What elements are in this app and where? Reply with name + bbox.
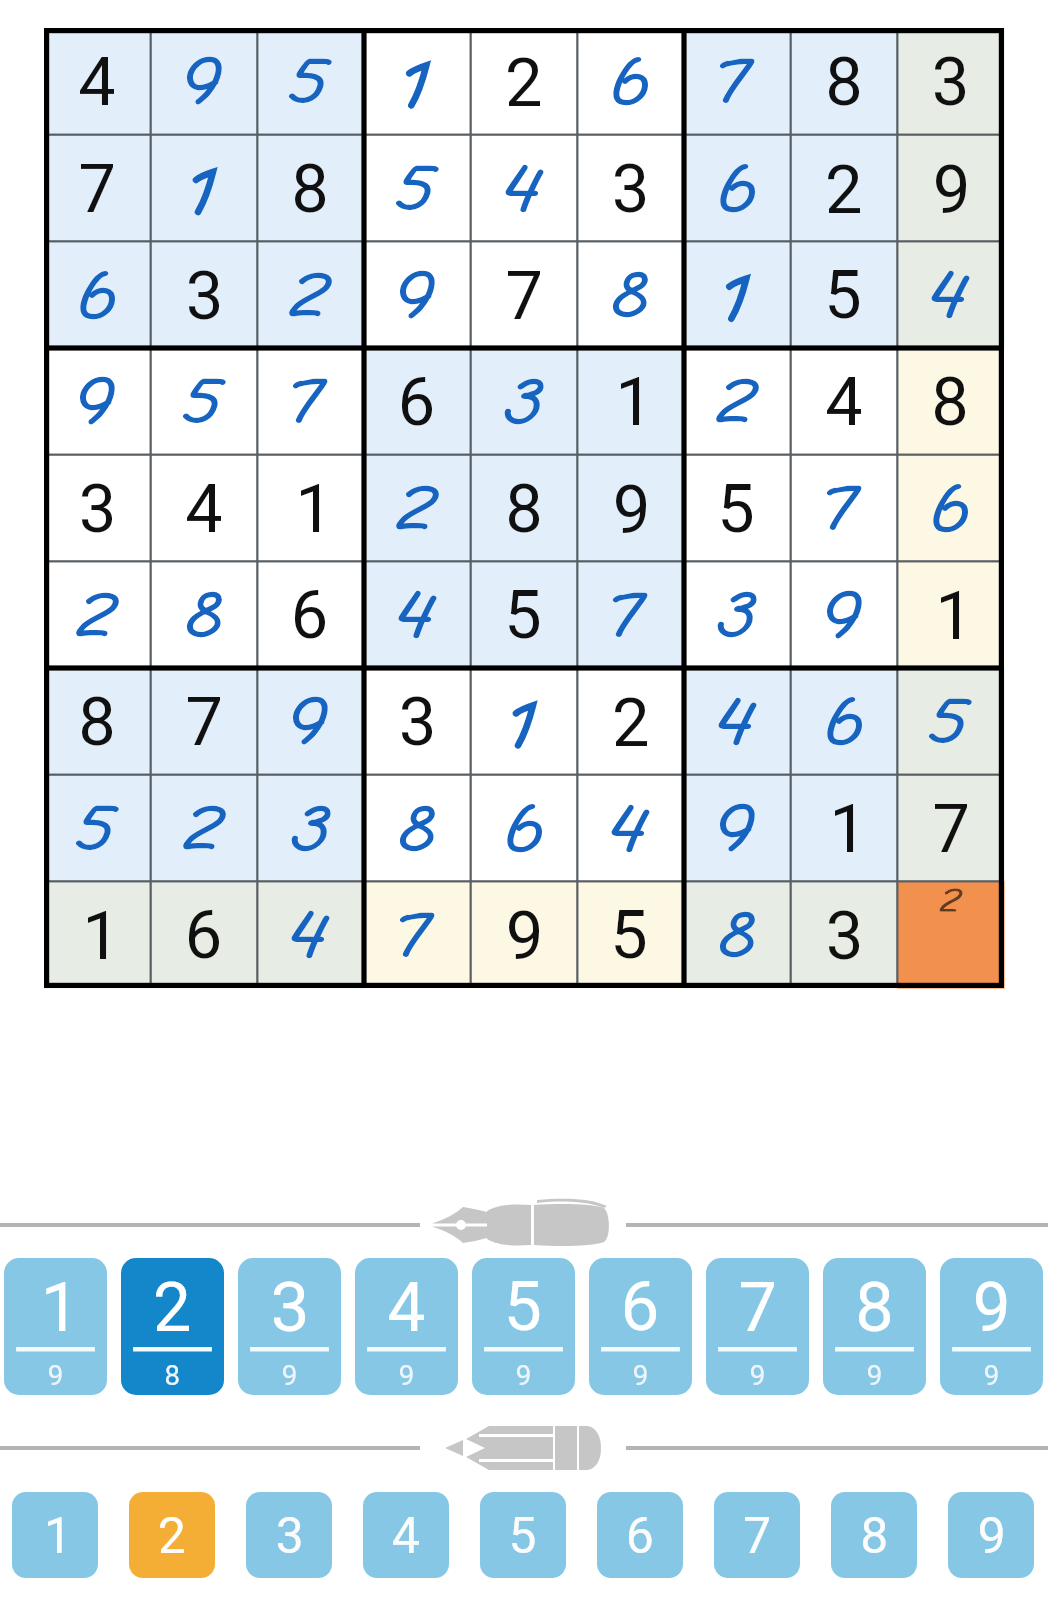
button[interactable]: Note 6 xyxy=(597,1492,683,1578)
button[interactable] xyxy=(151,242,258,349)
button[interactable] xyxy=(472,135,579,242)
button[interactable] xyxy=(151,563,258,670)
button[interactable] xyxy=(472,777,579,884)
button[interactable] xyxy=(472,563,579,670)
button[interactable]: Note 9 xyxy=(948,1492,1034,1578)
button[interactable]: Note 5 xyxy=(480,1492,566,1578)
button[interactable] xyxy=(472,884,579,988)
button[interactable]: Place 3 xyxy=(238,1258,341,1395)
button[interactable] xyxy=(472,670,579,777)
button[interactable] xyxy=(579,456,686,563)
button[interactable] xyxy=(151,670,258,777)
button[interactable]: Note 3 xyxy=(246,1492,332,1578)
button[interactable] xyxy=(151,28,258,135)
button[interactable] xyxy=(686,884,793,988)
button[interactable]: Place 9 xyxy=(940,1258,1043,1395)
button[interactable]: Place 2 xyxy=(121,1258,224,1395)
button[interactable] xyxy=(579,884,686,988)
button[interactable] xyxy=(900,135,1004,242)
button[interactable]: Note 7 xyxy=(714,1492,800,1578)
button[interactable] xyxy=(365,349,472,456)
button[interactable] xyxy=(151,884,258,988)
button[interactable] xyxy=(44,563,151,670)
button[interactable] xyxy=(258,777,365,884)
button[interactable] xyxy=(793,777,900,884)
button[interactable] xyxy=(579,777,686,884)
button[interactable] xyxy=(151,349,258,456)
button[interactable]: Place 1 xyxy=(4,1258,107,1395)
button[interactable] xyxy=(900,349,1004,456)
button[interactable] xyxy=(793,670,900,777)
button[interactable] xyxy=(793,563,900,670)
button[interactable] xyxy=(258,135,365,242)
button[interactable] xyxy=(44,28,151,135)
button[interactable] xyxy=(44,777,151,884)
button[interactable] xyxy=(900,884,1004,988)
button[interactable] xyxy=(365,456,472,563)
button[interactable] xyxy=(579,28,686,135)
button[interactable] xyxy=(686,135,793,242)
button[interactable] xyxy=(793,242,900,349)
button[interactable] xyxy=(686,563,793,670)
button[interactable] xyxy=(258,563,365,670)
button[interactable] xyxy=(365,563,472,670)
button[interactable] xyxy=(900,242,1004,349)
button[interactable] xyxy=(900,670,1004,777)
button[interactable] xyxy=(686,456,793,563)
button[interactable] xyxy=(686,349,793,456)
button[interactable] xyxy=(258,456,365,563)
button[interactable] xyxy=(258,884,365,988)
button[interactable]: Pen mode xyxy=(0,1196,1048,1254)
button[interactable] xyxy=(365,884,472,988)
button[interactable] xyxy=(365,670,472,777)
button[interactable] xyxy=(793,349,900,456)
button[interactable] xyxy=(151,777,258,884)
button[interactable] xyxy=(579,563,686,670)
button[interactable] xyxy=(44,884,151,988)
button[interactable] xyxy=(900,563,1004,670)
button[interactable]: Pencil mode xyxy=(0,1419,1048,1477)
button[interactable] xyxy=(579,670,686,777)
button[interactable] xyxy=(44,456,151,563)
button[interactable]: Place 7 xyxy=(706,1258,809,1395)
button[interactable] xyxy=(900,28,1004,135)
button[interactable] xyxy=(579,349,686,456)
button[interactable] xyxy=(793,135,900,242)
button[interactable] xyxy=(686,28,793,135)
button[interactable] xyxy=(258,242,365,349)
button[interactable] xyxy=(258,670,365,777)
button[interactable]: Place 5 xyxy=(472,1258,575,1395)
button[interactable] xyxy=(258,349,365,456)
button[interactable] xyxy=(472,242,579,349)
button[interactable]: Note 8 xyxy=(831,1492,917,1578)
button[interactable] xyxy=(365,777,472,884)
button[interactable] xyxy=(44,670,151,777)
button[interactable] xyxy=(44,135,151,242)
button[interactable] xyxy=(44,242,151,349)
button[interactable]: Note 2 xyxy=(129,1492,215,1578)
button[interactable] xyxy=(579,242,686,349)
button[interactable]: Note 4 xyxy=(363,1492,449,1578)
button[interactable] xyxy=(258,28,365,135)
button[interactable] xyxy=(365,135,472,242)
button[interactable] xyxy=(793,456,900,563)
button[interactable] xyxy=(900,777,1004,884)
button[interactable] xyxy=(686,242,793,349)
button[interactable] xyxy=(686,670,793,777)
button[interactable] xyxy=(472,456,579,563)
button[interactable] xyxy=(793,28,900,135)
button[interactable] xyxy=(365,242,472,349)
button[interactable] xyxy=(151,456,258,563)
button[interactable] xyxy=(365,28,472,135)
button[interactable] xyxy=(151,135,258,242)
button[interactable]: Place 8 xyxy=(823,1258,926,1395)
button[interactable]: Note 1 xyxy=(12,1492,98,1578)
button[interactable]: Place 4 xyxy=(355,1258,458,1395)
button[interactable] xyxy=(44,349,151,456)
button[interactable] xyxy=(793,884,900,988)
button[interactable] xyxy=(686,777,793,884)
button[interactable] xyxy=(579,135,686,242)
button[interactable] xyxy=(472,28,579,135)
button[interactable] xyxy=(472,349,579,456)
button[interactable] xyxy=(900,456,1004,563)
